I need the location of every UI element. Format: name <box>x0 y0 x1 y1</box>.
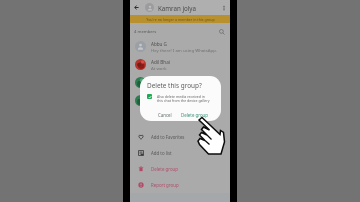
button[interactable]: Report group <box>130 177 230 193</box>
button[interactable] <box>130 73 230 91</box>
staticText: At work <box>151 65 167 71</box>
button[interactable]: Add to Favorites <box>130 129 230 145</box>
staticText: Cancel <box>158 112 172 118</box>
button[interactable] <box>130 91 230 109</box>
button[interactable]: Cancel <box>155 111 175 119</box>
button[interactable]: Also delete media <box>147 94 152 99</box>
staticText: Also delete media received in this chat … <box>157 94 210 103</box>
button[interactable]: Adil Bhai <box>130 55 230 73</box>
staticText: Hey there! I am using WhatsApp. <box>151 47 218 53</box>
staticText: Adil Bhai <box>151 59 170 65</box>
staticText: Delete group <box>181 112 208 118</box>
button[interactable]: Group photo <box>145 3 154 12</box>
staticText: You're no longer a member in this group <box>146 17 215 22</box>
staticText: 4 members <box>134 29 157 35</box>
button[interactable]: Add to list <box>130 145 230 161</box>
staticText: Delete this group? <box>147 81 202 90</box>
staticText: Report group <box>151 182 179 188</box>
button[interactable]: Search <box>217 27 226 36</box>
staticText: Add to Favorites <box>151 134 185 140</box>
button[interactable]: More options <box>218 2 229 13</box>
staticText: Kamran jolya <box>158 4 196 12</box>
button[interactable]: Delete group <box>178 111 211 119</box>
staticText: Delete group <box>151 166 178 172</box>
button[interactable]: Back <box>132 3 141 12</box>
staticText: Abbu G <box>151 41 167 47</box>
button[interactable]: Delete group <box>130 161 230 177</box>
button[interactable]: Abbu G <box>130 37 230 55</box>
staticText: Add to list <box>151 150 172 156</box>
